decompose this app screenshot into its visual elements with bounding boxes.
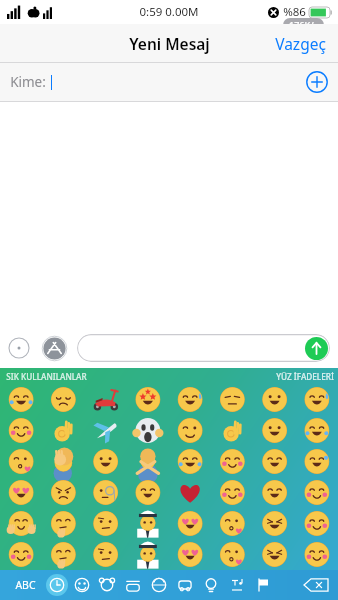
staticText: Kime: (10, 73, 46, 91)
staticText: Yeni Mesaj (129, 33, 210, 54)
button[interactable]: Apps (42, 336, 67, 361)
button[interactable]: Camera (8, 337, 30, 359)
button[interactable]: Flags (250, 570, 276, 600)
button[interactable]: Objects (198, 570, 224, 600)
button[interactable]: Animals (94, 570, 120, 600)
button[interactable]: Send (77, 334, 330, 362)
button[interactable]: Send (305, 337, 328, 360)
staticText: ABC (15, 578, 36, 592)
button[interactable]: Vazgeç (263, 27, 338, 60)
staticText: 0:59 0.00M (139, 4, 199, 20)
button[interactable]: Activities (146, 570, 172, 600)
staticText: YÜZ İFADELERİ (276, 371, 334, 382)
button[interactable]: Symbols (224, 570, 250, 600)
button[interactable]: Travel (172, 570, 198, 600)
button[interactable]: Recently used (44, 570, 69, 600)
staticText: 176K/s (289, 19, 318, 31)
button[interactable]: ABC (6, 570, 44, 600)
button[interactable]: Delete (302, 574, 332, 596)
staticText: Vazgeç (275, 33, 326, 54)
button[interactable]: Add contact (306, 71, 328, 93)
staticText: %86 (283, 4, 306, 20)
button[interactable]: Smileys (69, 570, 94, 600)
button[interactable]: Food (120, 570, 146, 600)
staticText: SIK KULLANILANLAR (6, 371, 87, 382)
